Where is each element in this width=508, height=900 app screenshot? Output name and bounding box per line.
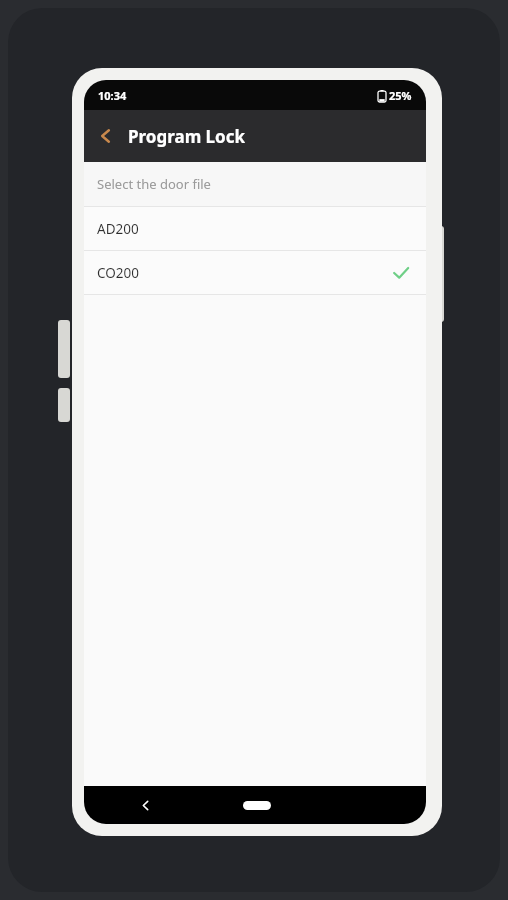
staticText: 25% [389, 88, 412, 103]
button[interactable]: CO200 [84, 251, 426, 294]
button[interactable]: Home [243, 801, 271, 810]
button[interactable]: AD200 [84, 207, 426, 250]
staticText: AD200 [97, 220, 139, 238]
staticText: CO200 [97, 264, 139, 282]
staticText: 10:34 [98, 88, 127, 103]
button[interactable]: Back [84, 114, 128, 158]
button[interactable]: Back [130, 790, 160, 820]
staticText: Program Lock [128, 125, 246, 148]
staticText: Select the door file [97, 175, 211, 193]
